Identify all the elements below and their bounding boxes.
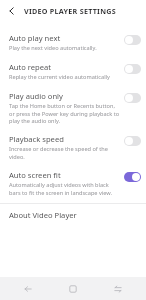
button[interactable]: Back [11,277,45,300]
button[interactable]: Playback speed toggle [124,136,141,146]
staticText: About Video Player [9,210,77,220]
button[interactable]: Auto play next toggle [124,35,141,45]
button[interactable]: Auto repeat [0,57,146,86]
staticText: Tap the Home button or Recents button, o… [9,102,120,124]
staticText: Play audio only [9,91,63,101]
button[interactable]: Play audio only [0,86,146,129]
staticText: VIDEO PLAYER SETTINGS [24,6,116,16]
button[interactable]: Auto repeat toggle [124,64,141,74]
staticText: Auto screen fit [9,170,61,180]
button[interactable]: Auto play next [0,28,146,57]
button[interactable]: Auto screen fit [0,165,146,201]
button[interactable]: Navigate up [4,3,20,19]
button[interactable]: Play audio only toggle [124,93,141,103]
staticText: Auto play next [9,33,61,43]
staticText: Increase or decrease the speed of the vi… [9,145,120,160]
staticText: Playback speed [9,134,64,144]
button[interactable]: About Video Player [0,204,146,226]
button[interactable]: Recents [101,277,135,300]
button[interactable]: Home [56,277,90,300]
button[interactable]: Auto screen fit toggle [124,172,141,182]
staticText: Play the next video automatically. [9,44,97,52]
staticText: Replay the current video automatically [9,73,110,81]
staticText: Auto repeat [9,62,52,72]
button[interactable]: Playback speed [0,129,146,165]
staticText: Automatically adjust videos with black b… [9,181,120,196]
